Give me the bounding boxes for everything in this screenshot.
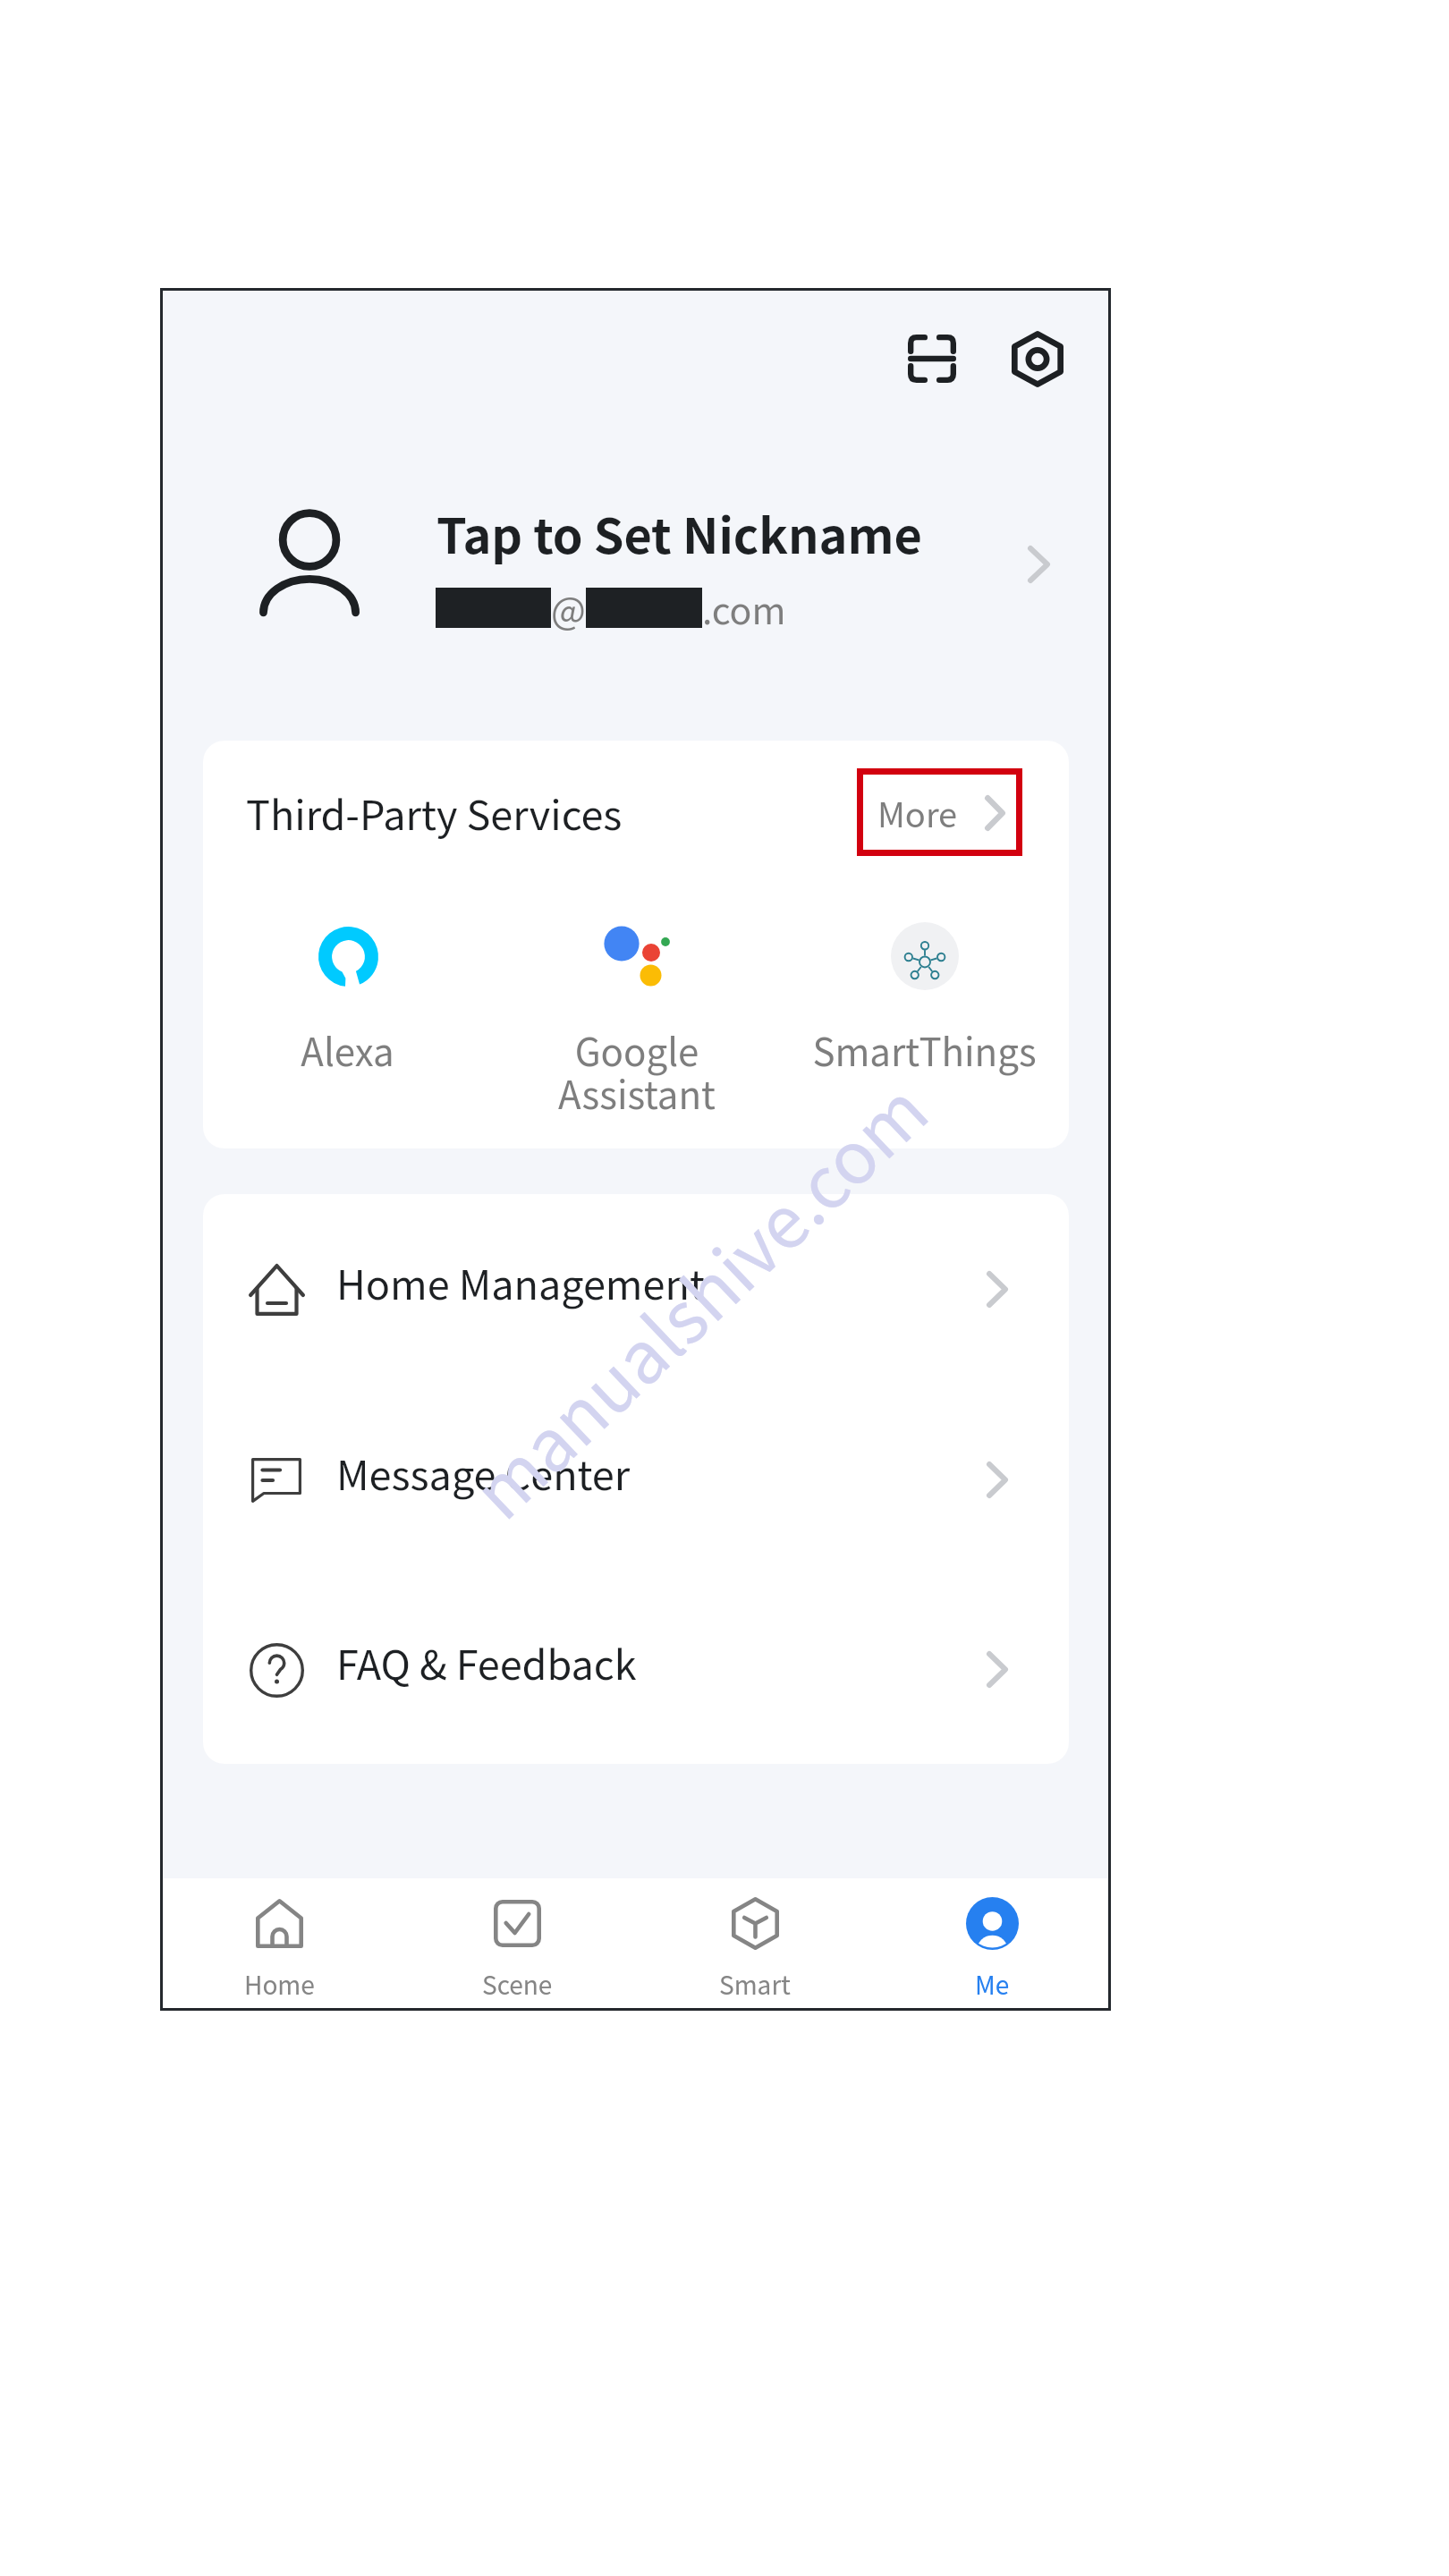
staticText: Me (975, 1966, 1010, 2003)
staticText: @ (551, 581, 586, 634)
button[interactable]: Message Center (203, 1385, 1069, 1575)
staticText: Home (244, 1966, 315, 2003)
button[interactable]: Home Management (203, 1194, 1069, 1385)
button[interactable]: Alexa (203, 917, 492, 1123)
button[interactable]: More (857, 768, 1022, 856)
staticText: Third-Party Services (246, 784, 623, 842)
staticText: Tap to Set Nickname (436, 497, 922, 567)
staticText: Google Assistant (558, 1022, 716, 1120)
button[interactable]: Google Assistant (492, 917, 781, 1123)
staticText: manualshive.com (447, 1057, 947, 1539)
staticText: Message Center (336, 1444, 631, 1502)
button[interactable]: Scene (398, 1878, 636, 2011)
button[interactable]: Settings (995, 315, 1080, 402)
button[interactable]: Tap to Set Nickname (203, 474, 1069, 653)
button[interactable]: Home (160, 1878, 398, 2011)
staticText: .com (702, 581, 786, 634)
button[interactable]: Me (873, 1878, 1111, 2011)
button[interactable]: Smart (636, 1878, 874, 2011)
staticText: More (877, 788, 958, 837)
staticText: SmartThings (812, 1022, 1037, 1077)
staticText: FAQ & Feedback (336, 1633, 637, 1691)
staticText: Home Management (336, 1253, 705, 1311)
staticText: Scene (482, 1966, 553, 2003)
staticText: Alexa (301, 1022, 394, 1077)
staticText: Smart (719, 1966, 791, 2003)
button[interactable]: FAQ & Feedback (203, 1574, 1069, 1764)
button[interactable]: Scan QR code (890, 317, 974, 401)
button[interactable]: SmartThings (780, 917, 1069, 1123)
